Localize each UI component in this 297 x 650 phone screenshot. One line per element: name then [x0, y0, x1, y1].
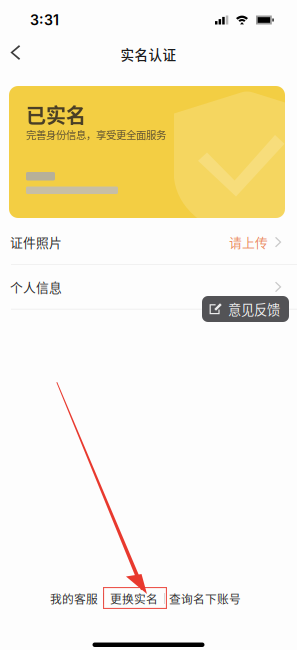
- staticText: 更换实名: [110, 590, 158, 607]
- button[interactable]: 意见反馈: [202, 296, 289, 322]
- button[interactable]: 返回: [0, 39, 32, 73]
- button[interactable]: 更换实名: [104, 587, 164, 609]
- staticText: 完善身份信息，享受更全面服务: [26, 127, 166, 142]
- staticText: 查询名下账号: [169, 590, 241, 607]
- button[interactable]: 查询名下账号: [165, 587, 245, 609]
- staticText: 我的客服: [50, 590, 98, 607]
- staticText: 实名认证: [120, 44, 176, 64]
- staticText: 已实名: [26, 100, 86, 129]
- button[interactable]: 证件照片: [0, 220, 297, 264]
- staticText: 请上传: [229, 233, 268, 251]
- button[interactable]: 我的客服: [45, 587, 103, 609]
- staticText: 证件照片: [10, 233, 62, 251]
- staticText: 个人信息: [10, 277, 62, 296]
- staticText: 3:31: [30, 11, 59, 28]
- button[interactable]: 个人信息: [0, 265, 297, 309]
- staticText: 意见反馈: [228, 299, 280, 319]
